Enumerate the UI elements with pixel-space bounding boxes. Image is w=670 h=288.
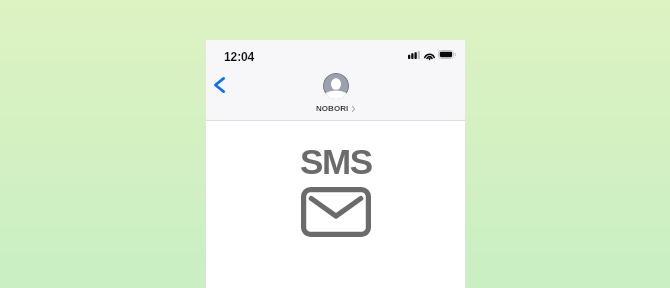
button[interactable]: NOBORI [316,73,355,113]
staticText: 12:04 [224,50,255,63]
staticText: SMS [300,142,372,181]
button[interactable]: Back [204,69,235,100]
staticText: NOBORI [316,104,349,113]
